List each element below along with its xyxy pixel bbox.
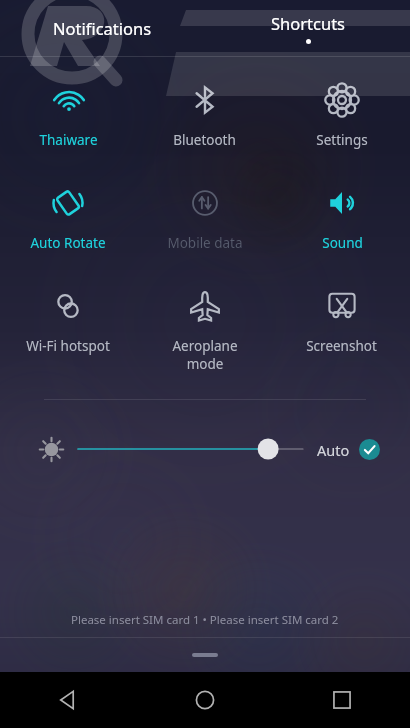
button[interactable]: Aeroplane mode [136, 285, 273, 373]
button[interactable]: Notifications [0, 0, 205, 56]
button[interactable]: Recents [273, 672, 410, 728]
button[interactable]: Brightness [34, 432, 68, 466]
staticText: Shortcuts [271, 12, 345, 34]
button[interactable]: Auto [317, 439, 380, 460]
button[interactable]: Home [136, 672, 273, 728]
button[interactable]: Bluetooth [136, 79, 273, 149]
staticText: Auto Rotate [30, 234, 106, 252]
staticText: Auto [317, 440, 350, 460]
staticText: Mobile data [167, 234, 243, 252]
button[interactable]: Sound [273, 182, 410, 252]
button[interactable]: Shortcuts [205, 0, 410, 56]
staticText: Sound [322, 234, 363, 252]
staticText: Screenshot [306, 337, 377, 355]
staticText: Aeroplane mode [172, 337, 238, 373]
button[interactable]: Settings [273, 79, 410, 149]
button[interactable]: Mobile data [136, 182, 273, 252]
button[interactable]: Collapse panel [0, 638, 410, 672]
staticText: Thaiware [39, 131, 98, 149]
button[interactable]: Auto Rotate [0, 182, 136, 252]
button[interactable]: Brightness slider [78, 433, 303, 465]
staticText: Please insert SIM card 1 • Please insert… [71, 612, 339, 628]
button[interactable]: Back [0, 672, 136, 728]
staticText: Bluetooth [173, 131, 236, 149]
staticText: Settings [316, 131, 368, 149]
staticText: Notifications [53, 17, 152, 39]
button[interactable]: Screenshot [273, 285, 410, 355]
button[interactable]: Thaiware [0, 79, 136, 149]
staticText: Wi-Fi hotspot [26, 337, 110, 355]
button[interactable]: Wi-Fi hotspot [0, 285, 136, 355]
